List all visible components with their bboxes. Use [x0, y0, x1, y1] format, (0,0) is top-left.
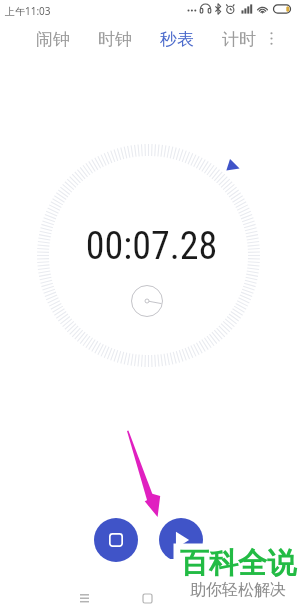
staticText: 00:07.28: [0, 224, 303, 269]
staticText: 闹钟: [36, 29, 70, 47]
button[interactable]: 闹钟: [36, 23, 70, 53]
staticText: 助你轻松解决: [190, 580, 286, 600]
staticText: 秒表: [160, 29, 194, 47]
button[interactable]: Recents: [73, 587, 95, 609]
button[interactable]: Reset: [94, 518, 138, 562]
button[interactable]: Start: [159, 518, 203, 562]
button[interactable]: 时钟: [98, 23, 132, 53]
staticText: 计时: [222, 29, 256, 47]
staticText: 百科全说: [180, 545, 296, 582]
button[interactable]: More options: [259, 26, 283, 50]
button[interactable]: Home: [136, 587, 158, 609]
staticText: 上午11:03: [5, 4, 51, 18]
button[interactable]: Back: [202, 587, 224, 609]
button[interactable]: 计时: [222, 23, 256, 53]
staticText: 时钟: [98, 29, 132, 47]
button[interactable]: 秒表: [160, 23, 194, 53]
